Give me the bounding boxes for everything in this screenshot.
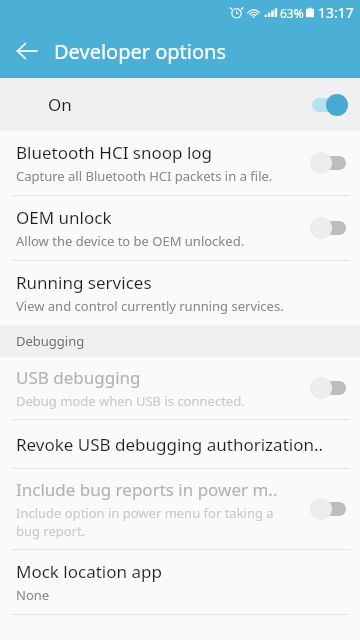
button[interactable]: Mock location app: [0, 550, 360, 614]
staticText: USB debugging: [16, 366, 141, 389]
button[interactable]: Bluetooth HCI snoop log: [0, 131, 360, 195]
staticText: Include option in power menu for taking …: [16, 504, 274, 540]
staticText: On: [48, 93, 310, 116]
staticText: Capture all Bluetooth HCI packets in a f…: [16, 167, 273, 185]
staticText: Debugging: [16, 332, 85, 350]
staticText: Mock location app: [16, 560, 162, 583]
staticText: Developer options: [54, 38, 227, 65]
staticText: 63%: [280, 5, 304, 21]
button[interactable]: OEM unlock: [0, 196, 360, 260]
button[interactable]: Revoke USB debugging authorization..: [0, 420, 360, 468]
staticText: Include bug reports in power m..: [16, 478, 278, 501]
button[interactable]: USB debugging: [0, 357, 360, 419]
staticText: Allow the device to be OEM unlocked.: [16, 232, 245, 250]
button[interactable]: Include bug reports in power m..: [0, 469, 360, 549]
staticText: Bluetooth HCI snoop log: [16, 141, 213, 164]
staticText: None: [16, 586, 50, 604]
staticText: View and control currently running servi…: [16, 297, 284, 315]
staticText: Revoke USB debugging authorization..: [16, 433, 324, 456]
button[interactable]: Running services: [0, 261, 360, 325]
button[interactable]: On: [0, 78, 360, 131]
staticText: 13:17: [318, 3, 354, 22]
staticText: Debug mode when USB is connected.: [16, 392, 245, 410]
staticText: OEM unlock: [16, 206, 112, 229]
staticText: Running services: [16, 271, 152, 294]
button[interactable]: Back: [0, 24, 54, 78]
